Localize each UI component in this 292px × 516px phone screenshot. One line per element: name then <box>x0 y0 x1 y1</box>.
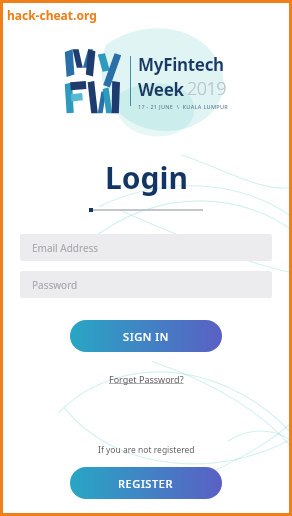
staticText: Email Address <box>32 241 99 255</box>
button[interactable]: Email Address <box>20 234 272 261</box>
staticText: SIGN IN <box>123 329 169 344</box>
staticText: Forget Password? <box>109 373 184 385</box>
staticText: REGISTER <box>118 476 174 491</box>
button[interactable]: REGISTER <box>70 467 222 499</box>
staticText: Week <box>138 78 184 101</box>
staticText: hack-cheat.org <box>7 7 97 23</box>
staticText: If you are not registered <box>98 444 195 456</box>
button[interactable]: SIGN IN <box>70 320 222 352</box>
staticText: Password <box>32 278 78 292</box>
button[interactable]: Password <box>20 271 272 298</box>
button[interactable]: Forget Password? <box>105 369 188 389</box>
staticText: MyFintech <box>138 53 224 76</box>
other: MyFintech Week logo <box>63 48 123 114</box>
staticText: Login <box>105 157 188 198</box>
staticText: 17 - 21 JUNE \ KUALA LUMPUR <box>138 103 229 110</box>
staticText: 2019 <box>187 76 227 101</box>
